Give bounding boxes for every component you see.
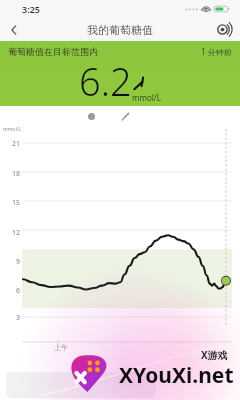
staticText: 葡萄糖值在目标范围内 (8, 46, 98, 57)
staticText: 12 (11, 228, 20, 238)
staticText: 上午 (54, 343, 68, 352)
staticText: 9 (15, 257, 20, 267)
staticText: XYouXi.net (119, 361, 234, 390)
staticText: 1 分钟前 (201, 46, 232, 57)
button[interactable]: Food log (80, 107, 102, 125)
staticText: 21 (11, 139, 20, 149)
staticText: 3 (15, 313, 20, 323)
staticText: 6 (15, 286, 20, 296)
button[interactable]: Add note (114, 107, 136, 125)
button[interactable] (6, 372, 156, 398)
staticText: 6.2 (79, 55, 132, 107)
button[interactable]: 葡萄糖值在目标范围内 (0, 41, 240, 106)
staticText: 3:25 (22, 3, 40, 15)
button[interactable]: Back (0, 18, 28, 41)
staticText: mmol/L (132, 92, 162, 103)
button[interactable]: Sensor status (210, 18, 240, 41)
staticText: 15 (11, 198, 20, 208)
staticText: X游戏 (201, 348, 228, 362)
staticText: mmol/L (3, 126, 22, 133)
staticText: 我的葡萄糖值 (87, 23, 153, 37)
staticText: 18 (11, 169, 20, 179)
